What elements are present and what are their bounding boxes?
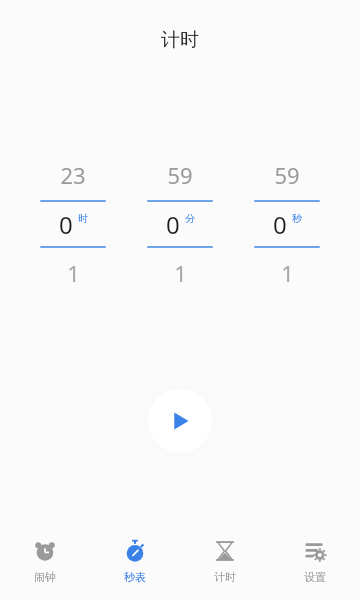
staticText: 时 — [78, 212, 88, 225]
staticText: 秒表 — [124, 570, 146, 584]
button[interactable]: 秒表 — [90, 528, 180, 600]
staticText: 59 — [167, 160, 193, 190]
button[interactable]: 0 — [147, 202, 213, 246]
button[interactable]: 0 — [254, 202, 320, 246]
staticText: 秒 — [292, 212, 302, 225]
staticText: 0 — [59, 208, 73, 241]
staticText: 59 — [274, 160, 300, 190]
button[interactable]: 计时 — [180, 528, 270, 600]
staticText: 1 — [281, 258, 294, 288]
staticText: 1 — [67, 258, 80, 288]
button[interactable]: Start — [132, 373, 228, 469]
staticText: 23 — [60, 160, 86, 190]
staticText: 1 — [174, 258, 187, 288]
staticText: 0 — [166, 208, 180, 241]
staticText: 计时 — [214, 570, 236, 584]
staticText: 设置 — [304, 570, 326, 584]
other: Start — [148, 389, 212, 453]
button[interactable]: 设置 — [270, 528, 360, 600]
staticText: 计时 — [161, 28, 199, 52]
staticText: 分 — [185, 212, 195, 225]
button[interactable]: 闹钟 — [0, 528, 90, 600]
staticText: 闹钟 — [34, 570, 56, 584]
button[interactable]: 0 — [40, 202, 106, 246]
staticText: 0 — [273, 208, 287, 241]
